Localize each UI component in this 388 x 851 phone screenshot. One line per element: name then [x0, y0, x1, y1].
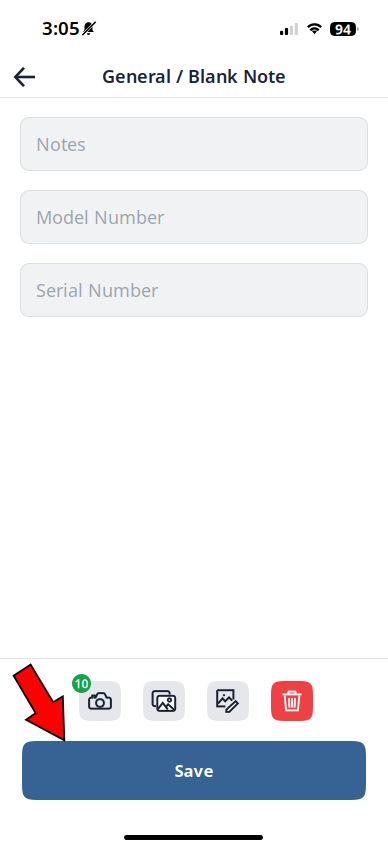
button[interactable]: Delete	[271, 681, 313, 721]
staticText: 10	[74, 675, 88, 692]
staticText: Serial Number	[36, 278, 158, 302]
button[interactable]: Save	[22, 741, 366, 800]
button[interactable]: Take photo	[79, 681, 121, 721]
staticText: Save	[174, 759, 213, 782]
staticText: Model Number	[36, 205, 164, 229]
staticText: 3:05	[42, 15, 80, 40]
button[interactable]: Photo library	[143, 681, 185, 721]
button[interactable]: Model Number	[20, 190, 368, 244]
button[interactable]: Edit photo	[207, 681, 249, 721]
button[interactable]: Serial Number	[20, 263, 368, 317]
staticText: 94	[335, 19, 351, 39]
button[interactable]: Notes	[20, 117, 368, 171]
staticText: Notes	[36, 132, 86, 156]
button[interactable]: Back	[3, 55, 47, 99]
staticText: General / Blank Note	[102, 64, 286, 88]
